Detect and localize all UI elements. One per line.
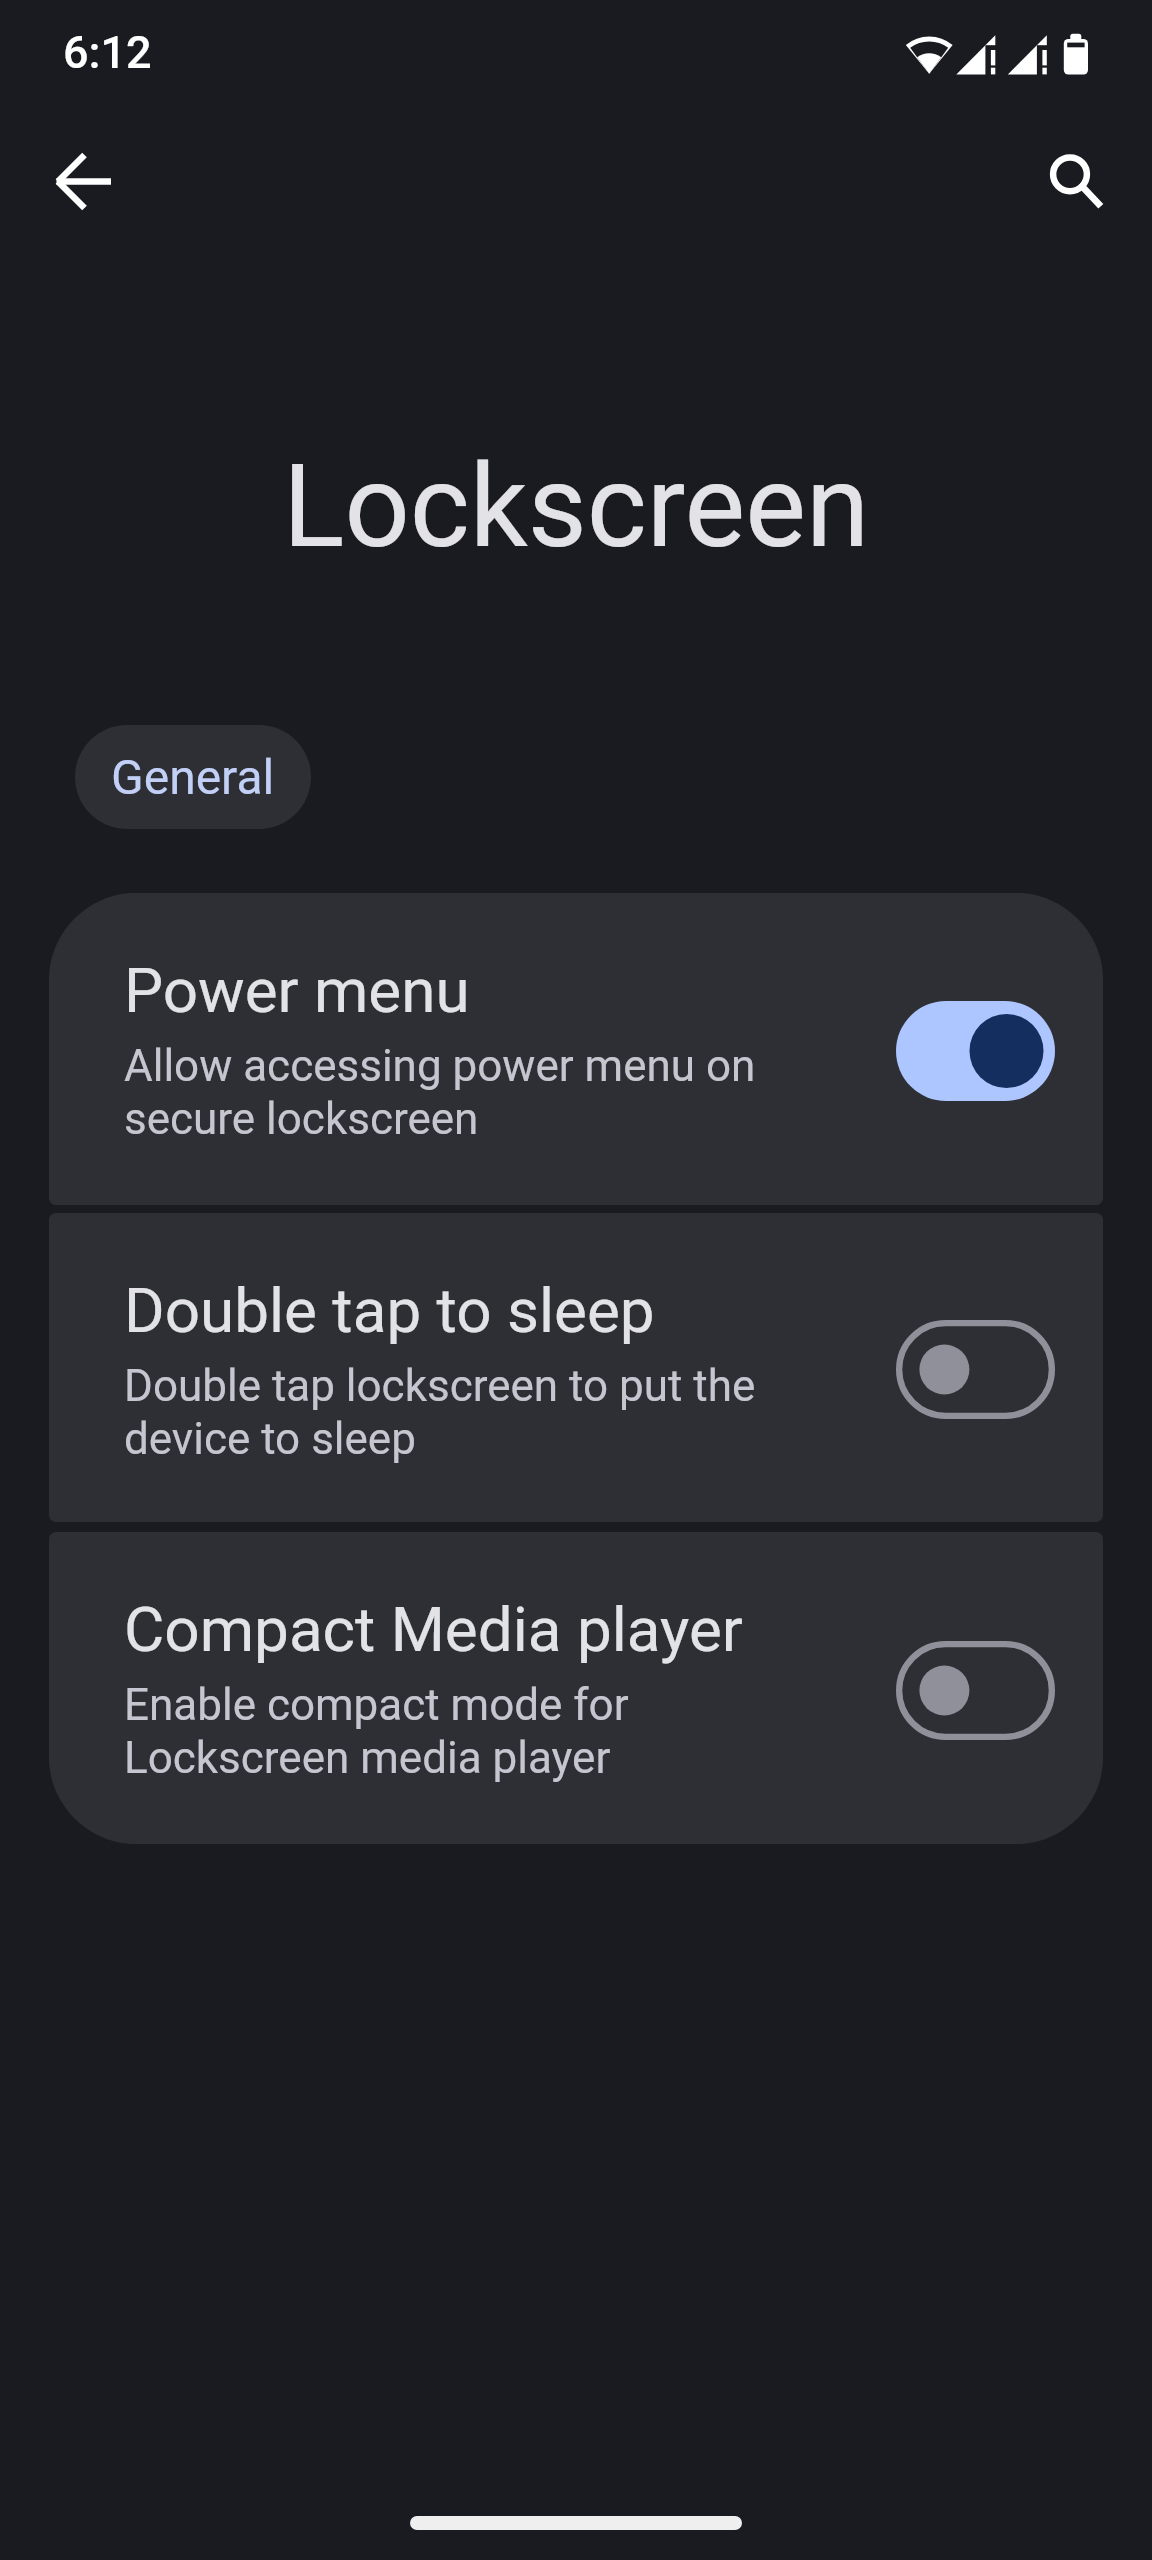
button[interactable]: Double tap to sleep: [49, 1213, 1103, 1522]
button[interactable]: Power menu: [49, 893, 1103, 1205]
staticText: Double tap to sleep: [124, 1274, 655, 1347]
button[interactable]: Search: [1017, 127, 1127, 237]
staticText: Enable compact mode for Lockscreen media…: [124, 1679, 824, 1784]
staticText: Power menu: [124, 954, 470, 1027]
button[interactable]: Back: [29, 127, 139, 237]
staticText: Double tap lockscreen to put the device …: [124, 1360, 824, 1465]
staticText: Allow accessing power menu on secure loc…: [124, 1040, 824, 1145]
button[interactable]: General: [75, 725, 311, 829]
button[interactable]: Compact Media player: [49, 1532, 1103, 1844]
staticText: Compact Media player: [124, 1593, 743, 1666]
other: Power menu toggle, on: [896, 1001, 1055, 1101]
other: Compact Media player toggle, off: [896, 1641, 1055, 1740]
staticText: General: [111, 749, 275, 805]
staticText: Lockscreen: [0, 440, 1152, 574]
staticText: 6:12: [63, 26, 152, 79]
other: Double tap to sleep toggle, off: [896, 1320, 1055, 1419]
